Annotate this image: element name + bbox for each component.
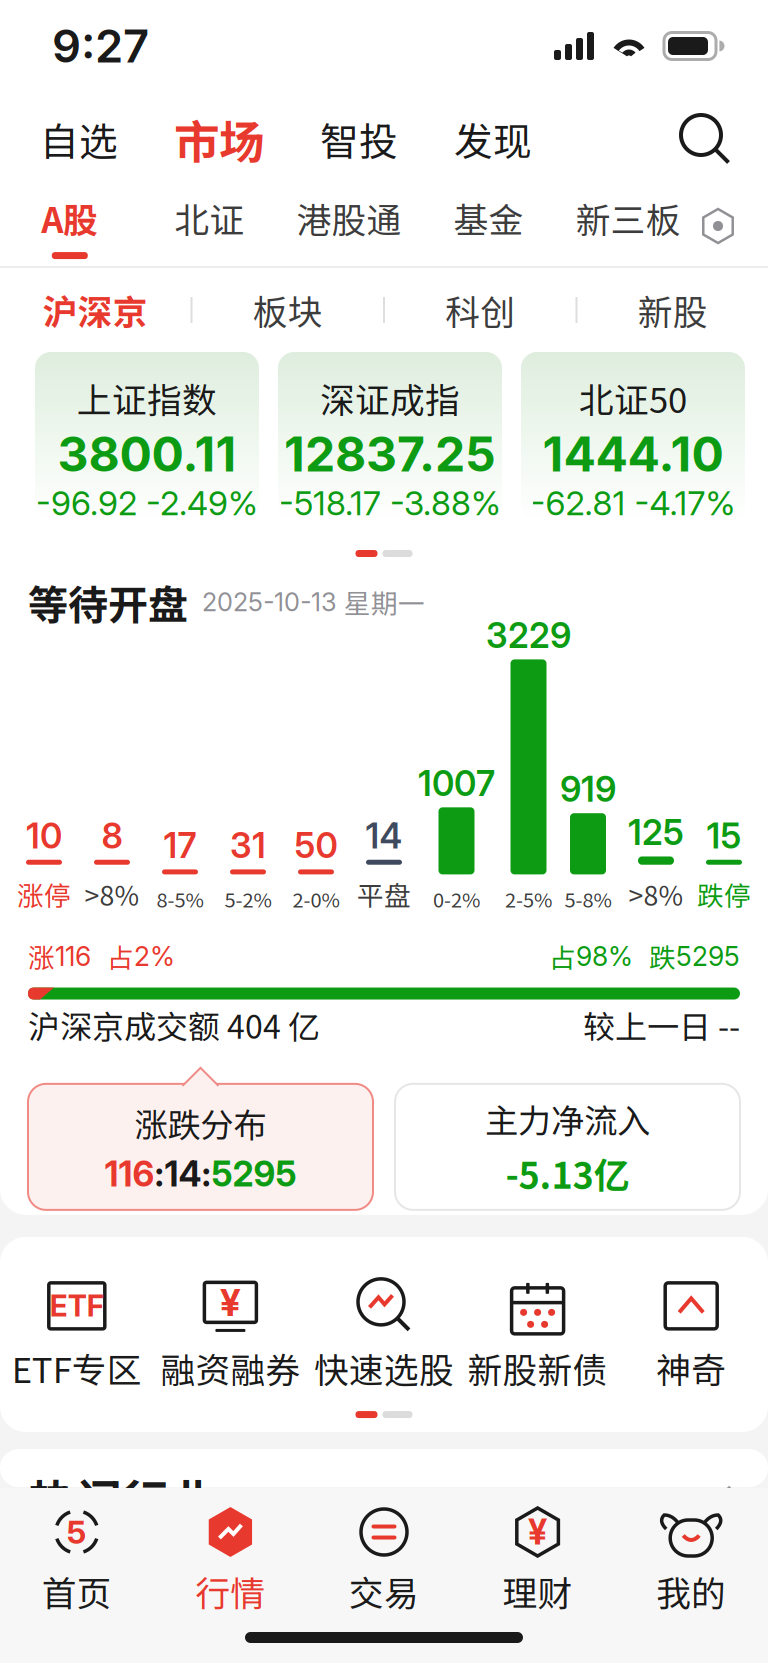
staticText: 8 [101,815,122,857]
button[interactable]: 搜索 [674,108,736,170]
staticText: 0-2% [433,884,480,913]
staticText: 新股新债 [468,1343,608,1393]
staticText: 新三板 [576,193,681,243]
staticText: 科创 [445,285,515,335]
button[interactable]: 自选 [12,99,146,179]
staticText: 125 [628,811,684,853]
staticText: 5-8% [564,884,611,913]
staticText: 新股 [638,285,708,335]
staticText: 116 [55,940,91,972]
staticText: 98% [576,940,633,972]
staticText: 北证50 [579,373,687,423]
button[interactable]: ¥ [461,1502,614,1620]
staticText: 116 [104,1153,154,1195]
button[interactable]: ¥ [154,1279,307,1393]
staticText: -62.81 -4.17% [530,483,735,523]
staticText: 31 [230,824,266,866]
button[interactable]: 新三板 [558,186,698,266]
button[interactable]: 涨跌分布 [28,1084,373,1210]
staticText: 10 [26,815,62,857]
staticText: >8% [84,875,139,913]
staticText: 沪深京 [43,285,148,335]
staticText: 智投 [320,111,398,167]
staticText: 港股通 [296,193,401,243]
staticText: 首页 [42,1566,112,1616]
staticText: ETF [50,1288,104,1324]
button[interactable]: 我的 [614,1502,768,1620]
staticText: 17 [163,824,196,866]
button[interactable]: 行情 [154,1502,307,1620]
staticText: 涨停 [17,875,71,913]
staticText: 沪深京成交额 404 亿 [28,1001,320,1048]
button[interactable]: 自定义 [698,206,738,246]
staticText: 5295 [676,940,740,972]
staticText: 等待开盘 [28,573,188,631]
staticText: 主力净流入 [485,1095,650,1143]
staticText: 14 [164,1153,201,1195]
button[interactable]: 市场 [146,99,292,179]
staticText: 发现 [454,111,532,167]
staticText: 919 [560,768,616,810]
staticText: 理财 [503,1566,573,1616]
staticText: 平盘 [357,875,411,913]
staticText: ETF专区 [12,1343,142,1393]
button[interactable]: 发现 [426,99,560,179]
staticText: 5295 [211,1153,296,1195]
staticText: 占 [107,937,134,975]
staticText: 热门行业 [28,1465,216,1533]
staticText: 3800.11 [57,425,236,483]
button[interactable]: 北证50 [521,352,745,522]
button[interactable]: 基金 [419,186,558,266]
staticText: 3229 [486,614,571,656]
staticText: 1444.10 [542,425,723,483]
button[interactable]: A股 [0,186,140,266]
button[interactable]: 快速选股 [307,1279,461,1393]
staticText: 2-0% [292,884,339,913]
staticText: 交易 [349,1566,419,1616]
button[interactable]: 主力净流入 [395,1084,740,1210]
button[interactable]: 智投 [292,99,426,179]
staticText: 2025-10-13 [202,587,337,617]
staticText: -5.13亿 [505,1147,629,1199]
button[interactable]: 新股 [577,268,768,352]
staticText: 我的 [656,1566,726,1616]
staticText: 2-5% [505,884,552,913]
button[interactable]: 深证成指 [278,352,502,522]
button[interactable]: 新股新债 [461,1279,614,1393]
button[interactable]: 交易 [307,1502,461,1620]
button[interactable]: 港股通 [279,186,419,266]
staticText: -518.17 -3.88% [279,483,501,523]
staticText: 1007 [418,762,495,804]
staticText: 较上一日 -- [583,1001,740,1048]
staticText: 占 [549,937,576,975]
staticText: 12837.25 [284,425,496,483]
staticText: >8% [628,875,683,913]
button[interactable]: 北证 [140,186,279,266]
staticText: : [201,1153,211,1195]
button[interactable]: 5 [0,1502,154,1620]
staticText: : [154,1153,164,1195]
staticText: 8-5% [156,884,203,913]
button[interactable]: 神奇 [614,1279,768,1393]
staticText: 2% [134,940,175,972]
staticText: 行情 [195,1566,265,1616]
button[interactable]: ETF [0,1279,154,1393]
staticText: 5 [67,1513,87,1551]
button[interactable]: 上证指数 [35,352,259,522]
button[interactable]: 科创 [385,268,575,352]
staticText: ¥ [220,1280,241,1325]
staticText: 快速选股 [314,1343,454,1393]
staticText: 上证指数 [77,373,217,423]
staticText: 14 [365,815,402,857]
staticText: 跌停 [697,875,751,913]
button[interactable]: 板块 [192,268,383,352]
staticText: 北证 [174,193,244,243]
staticText: ¥ [528,1511,547,1553]
staticText: 涨 [28,937,55,975]
staticText: 5-2% [224,884,271,913]
staticText: A股 [41,193,98,243]
staticText: 星期一 [344,583,425,621]
button[interactable]: 沪深京 [0,268,190,352]
